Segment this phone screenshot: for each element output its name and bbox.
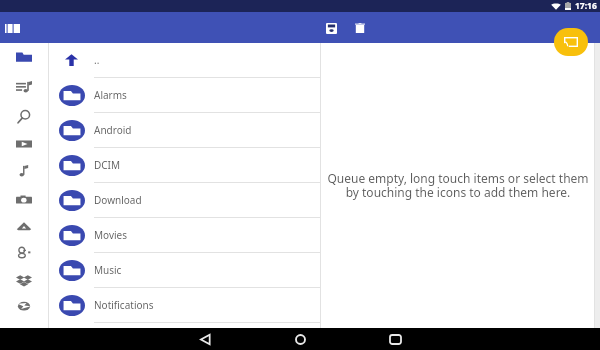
button[interactable]: Android (49, 113, 320, 147)
staticText: Movies (94, 228, 128, 242)
button[interactable]: Movies (49, 218, 320, 252)
button[interactable]: Google+ (7, 240, 41, 266)
staticText: .. (94, 53, 100, 67)
button[interactable]: Dropbox (7, 267, 41, 293)
button[interactable]: .. (49, 43, 320, 77)
button[interactable]: Home (289, 328, 311, 350)
button[interactable]: Video (7, 131, 41, 157)
button[interactable]: Notifications (49, 288, 320, 322)
button[interactable]: Cloud (7, 293, 41, 319)
button[interactable]: Download (49, 183, 320, 217)
button[interactable]: Alarms (49, 78, 320, 112)
staticText: Queue empty, long touch items or select … (327, 170, 589, 201)
staticText: 17:16 (575, 0, 597, 12)
button[interactable]: Save (318, 15, 344, 41)
button[interactable]: Drive (7, 213, 41, 239)
button[interactable]: Music (7, 158, 41, 184)
button[interactable]: Recents (384, 328, 406, 350)
button[interactable]: DCIM (49, 148, 320, 182)
staticText: Android (94, 123, 132, 137)
button[interactable]: Delete (347, 15, 373, 41)
button[interactable]: Cast screen (554, 28, 588, 56)
staticText: Music (94, 263, 122, 277)
button[interactable]: Back (194, 328, 216, 350)
staticText: DCIM (94, 158, 121, 172)
staticText: Notifications (94, 298, 154, 312)
button[interactable]: Camera (7, 187, 41, 213)
staticText: Alarms (94, 88, 127, 102)
button[interactable]: Playlist (7, 74, 41, 100)
button[interactable]: Music (49, 253, 320, 287)
staticText: Download (94, 193, 142, 207)
button[interactable]: Folders (7, 44, 41, 70)
button[interactable]: Search (7, 104, 41, 130)
button[interactable]: Toggle panels (0, 16, 24, 40)
